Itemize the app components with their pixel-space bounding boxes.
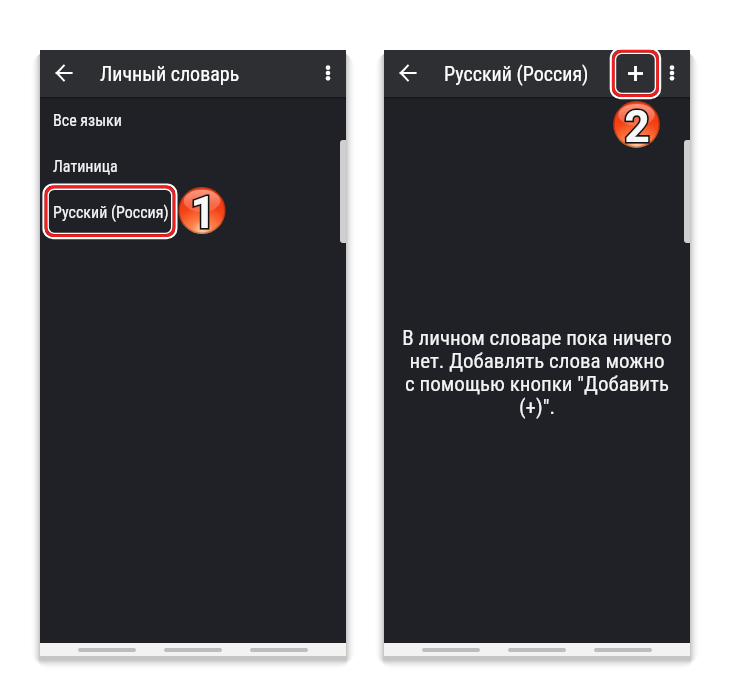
button[interactable]: Все языки: [40, 97, 346, 143]
staticText: 2: [624, 101, 650, 148]
button[interactable]: Back: [388, 53, 428, 93]
staticText: Латиница: [53, 157, 118, 176]
staticText: Личный словарь: [100, 62, 240, 85]
staticText: В личном словаре пока ничего нет. Добавл…: [384, 326, 690, 419]
staticText: 1: [190, 187, 216, 234]
staticText: Русский (Россия): [53, 203, 169, 222]
staticText: 1: [190, 187, 216, 234]
button[interactable]: Add word: [613, 51, 657, 95]
button[interactable]: Латиница: [40, 143, 346, 189]
staticText: 2: [624, 101, 650, 148]
button[interactable]: More options: [654, 55, 690, 91]
staticText: Русский (Россия): [444, 62, 589, 85]
staticText: Все языки: [53, 111, 122, 130]
button[interactable]: Русский (Россия): [40, 189, 346, 235]
button[interactable]: Back: [44, 53, 84, 93]
button[interactable]: More options: [310, 55, 346, 91]
